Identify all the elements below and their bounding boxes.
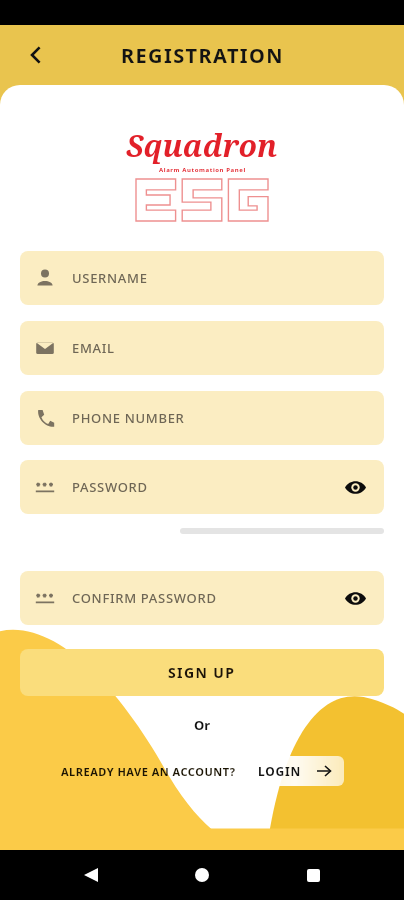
button[interactable]: Home: [182, 855, 222, 895]
button[interactable]: Show password: [340, 583, 370, 613]
button[interactable]: EMAIL: [20, 321, 384, 375]
button[interactable]: SIGN UP: [20, 649, 384, 696]
staticText: EMAIL: [72, 339, 115, 357]
button[interactable]: Back: [71, 855, 111, 895]
staticText: Or: [194, 716, 211, 734]
button[interactable]: PASSWORD: [20, 460, 384, 514]
staticText: REGISTRATION: [121, 42, 284, 69]
button[interactable]: Back: [14, 33, 58, 77]
staticText: SIGN UP: [168, 663, 236, 682]
staticText: CONFIRM PASSWORD: [72, 589, 217, 607]
staticText: Alarm Automation Panel: [159, 166, 246, 174]
button[interactable]: USERNAME: [20, 251, 384, 305]
button[interactable]: LOGIN: [246, 756, 344, 786]
staticText: Squadron: [126, 125, 278, 166]
staticText: PASSWORD: [72, 478, 148, 496]
button[interactable]: CONFIRM PASSWORD: [20, 571, 384, 625]
staticText: USERNAME: [72, 269, 148, 287]
button[interactable]: Recents: [293, 855, 333, 895]
staticText: PHONE NUMBER: [72, 409, 185, 427]
staticText: LOGIN: [258, 763, 302, 779]
button[interactable]: PHONE NUMBER: [20, 391, 384, 445]
button[interactable]: Show password: [340, 472, 370, 502]
staticText: ALREADY HAVE AN ACCOUNT?: [61, 764, 236, 779]
